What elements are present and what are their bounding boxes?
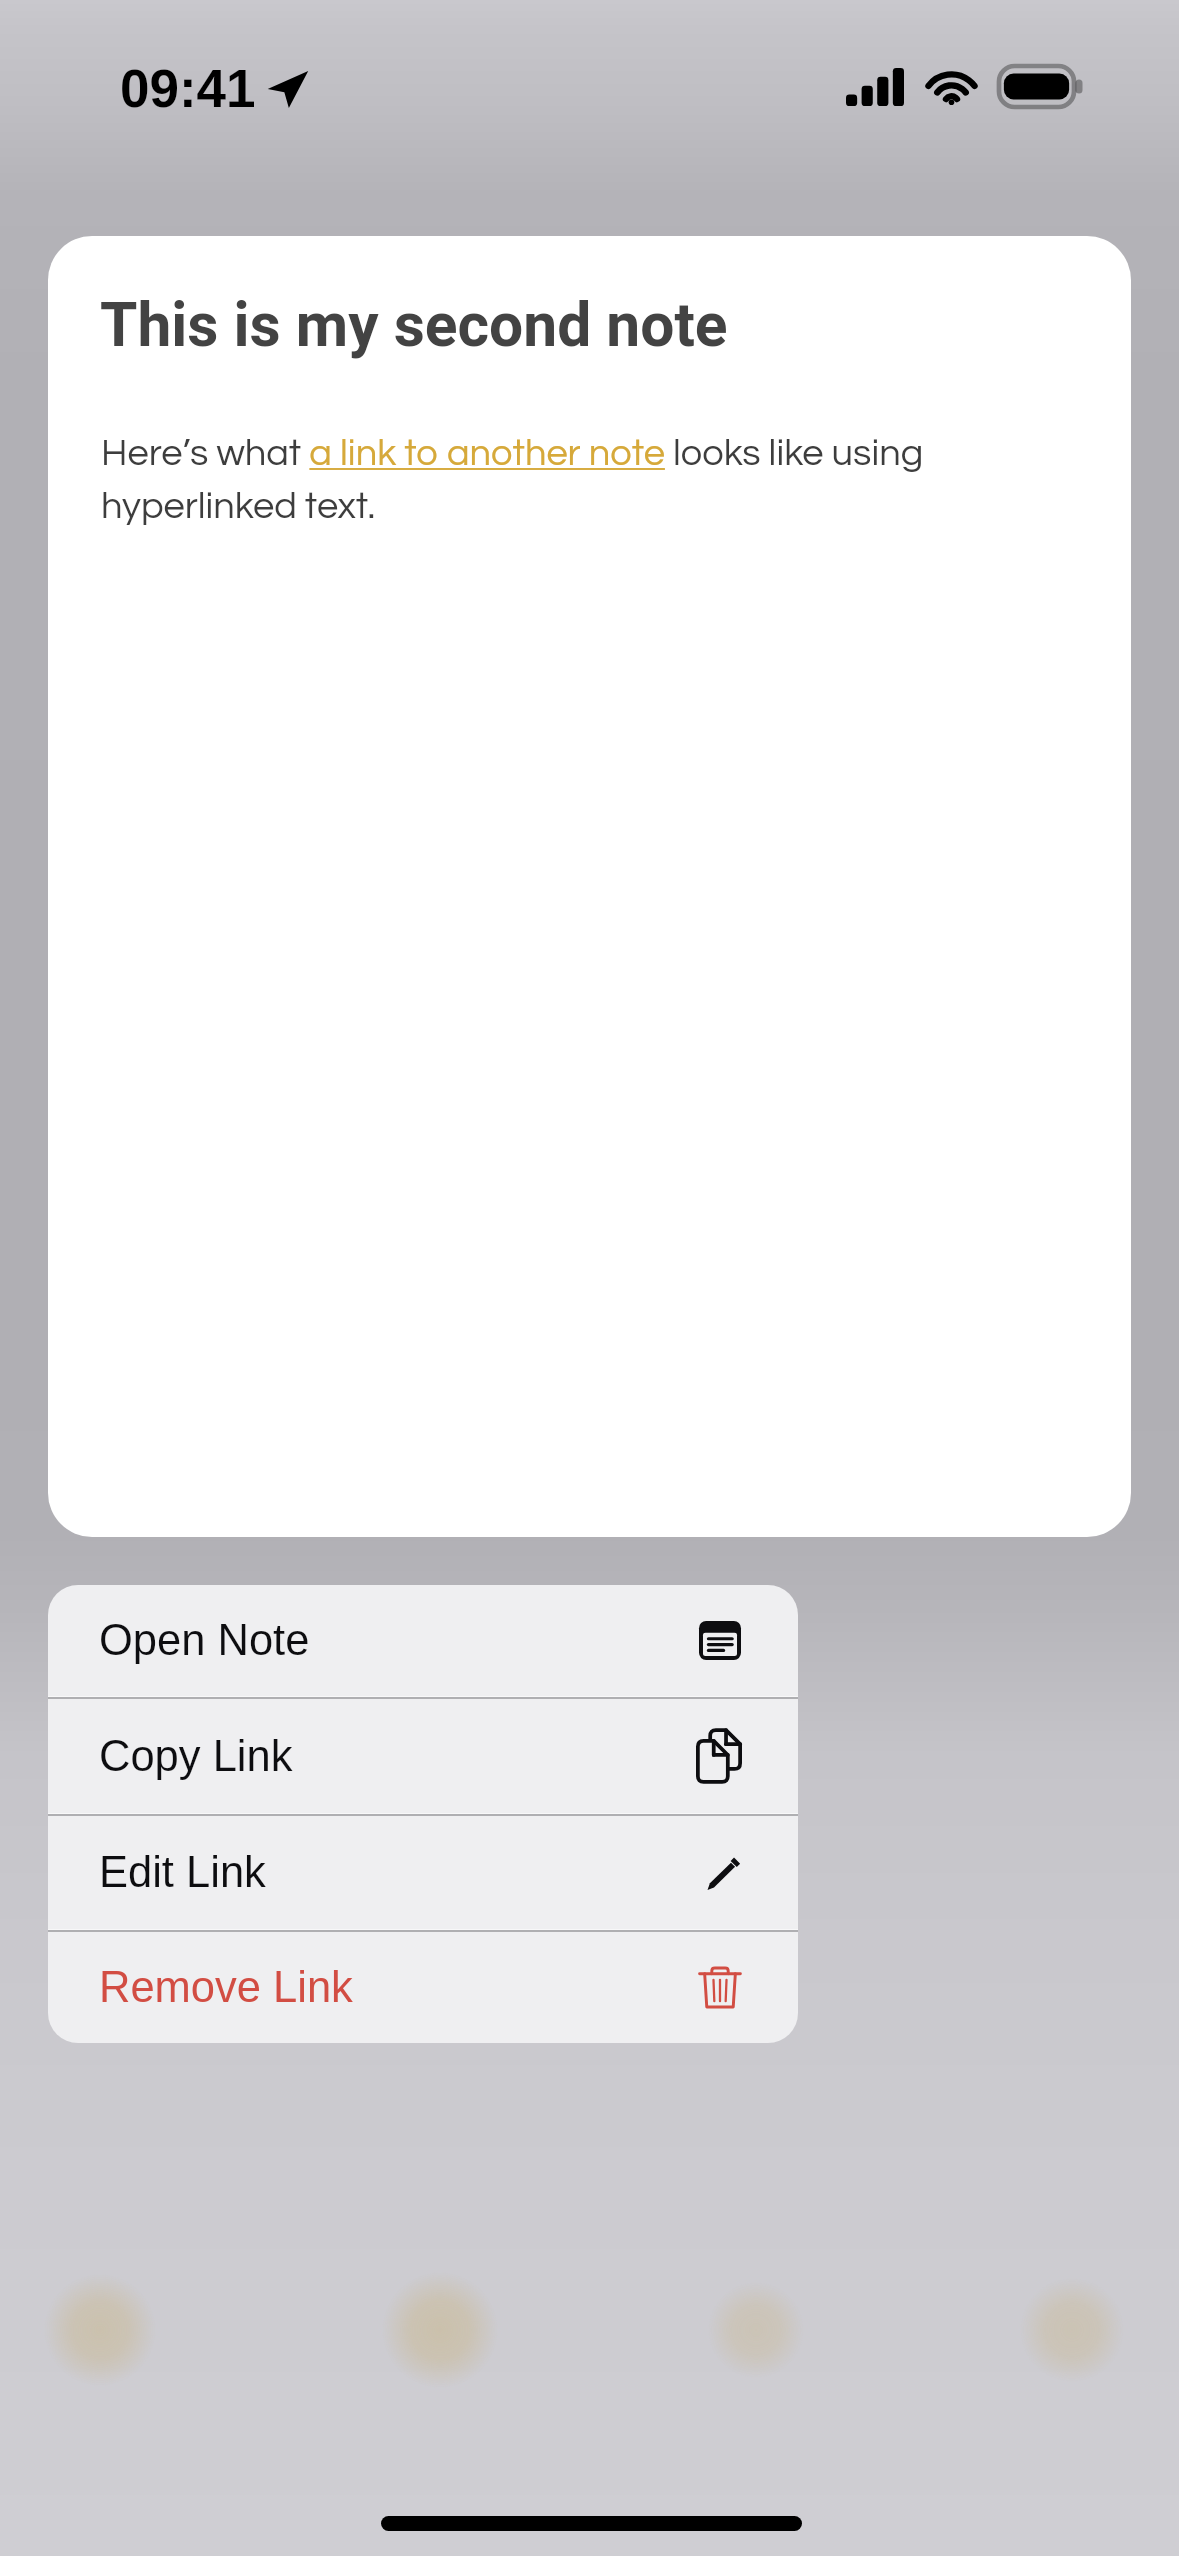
staticText: Open Note [99,1616,310,1665]
staticText: Copy Link [99,1732,293,1781]
button[interactable]: Edit Link [48,1816,798,1929]
button[interactable]: a link to another note [308,434,664,482]
button[interactable]: Remove Link [48,1932,798,2043]
other: Copy Link [697,1729,741,1783]
other: Open Note [699,1621,741,1660]
staticText: Here’s what a link to another note looks… [101,434,961,526]
staticText: Edit Link [99,1848,266,1897]
staticText: 09:41 [120,59,256,118]
button[interactable]: Open Note [48,1585,798,1696]
button[interactable]: Copy Link [48,1699,798,1813]
staticText: This is my second note [100,290,728,361]
other: Remove Link [699,1964,741,2012]
staticText: Remove Link [99,1963,353,2012]
button[interactable]: This is my second note [48,236,1131,1537]
other: Edit Link [707,1856,741,1890]
